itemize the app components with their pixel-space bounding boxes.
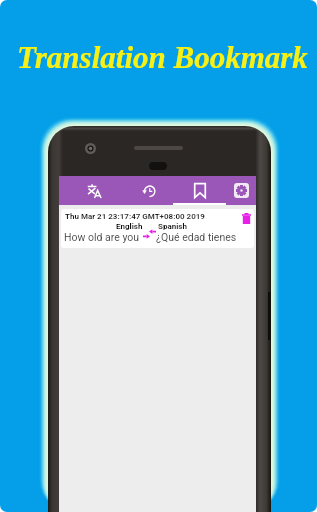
staticText: Translation Bookmark (17, 40, 308, 74)
button[interactable]: Delete bookmark (238, 210, 254, 226)
staticText: Thu Mar 21 23:17:47 GMT+08:00 2019 (65, 212, 205, 221)
button[interactable]: Thu Mar 21 23:17:47 GMT+08:00 2019 (61, 209, 254, 248)
button[interactable]: History (122, 176, 175, 205)
staticText: Spanish (158, 222, 187, 231)
button[interactable]: Settings (226, 176, 256, 205)
button[interactable]: Translate (68, 176, 121, 205)
staticText: How old are you (64, 231, 140, 243)
staticText: English (116, 222, 143, 231)
button[interactable]: Bookmarks (173, 176, 226, 205)
staticText: ¿Qué edad tienes (156, 231, 237, 243)
